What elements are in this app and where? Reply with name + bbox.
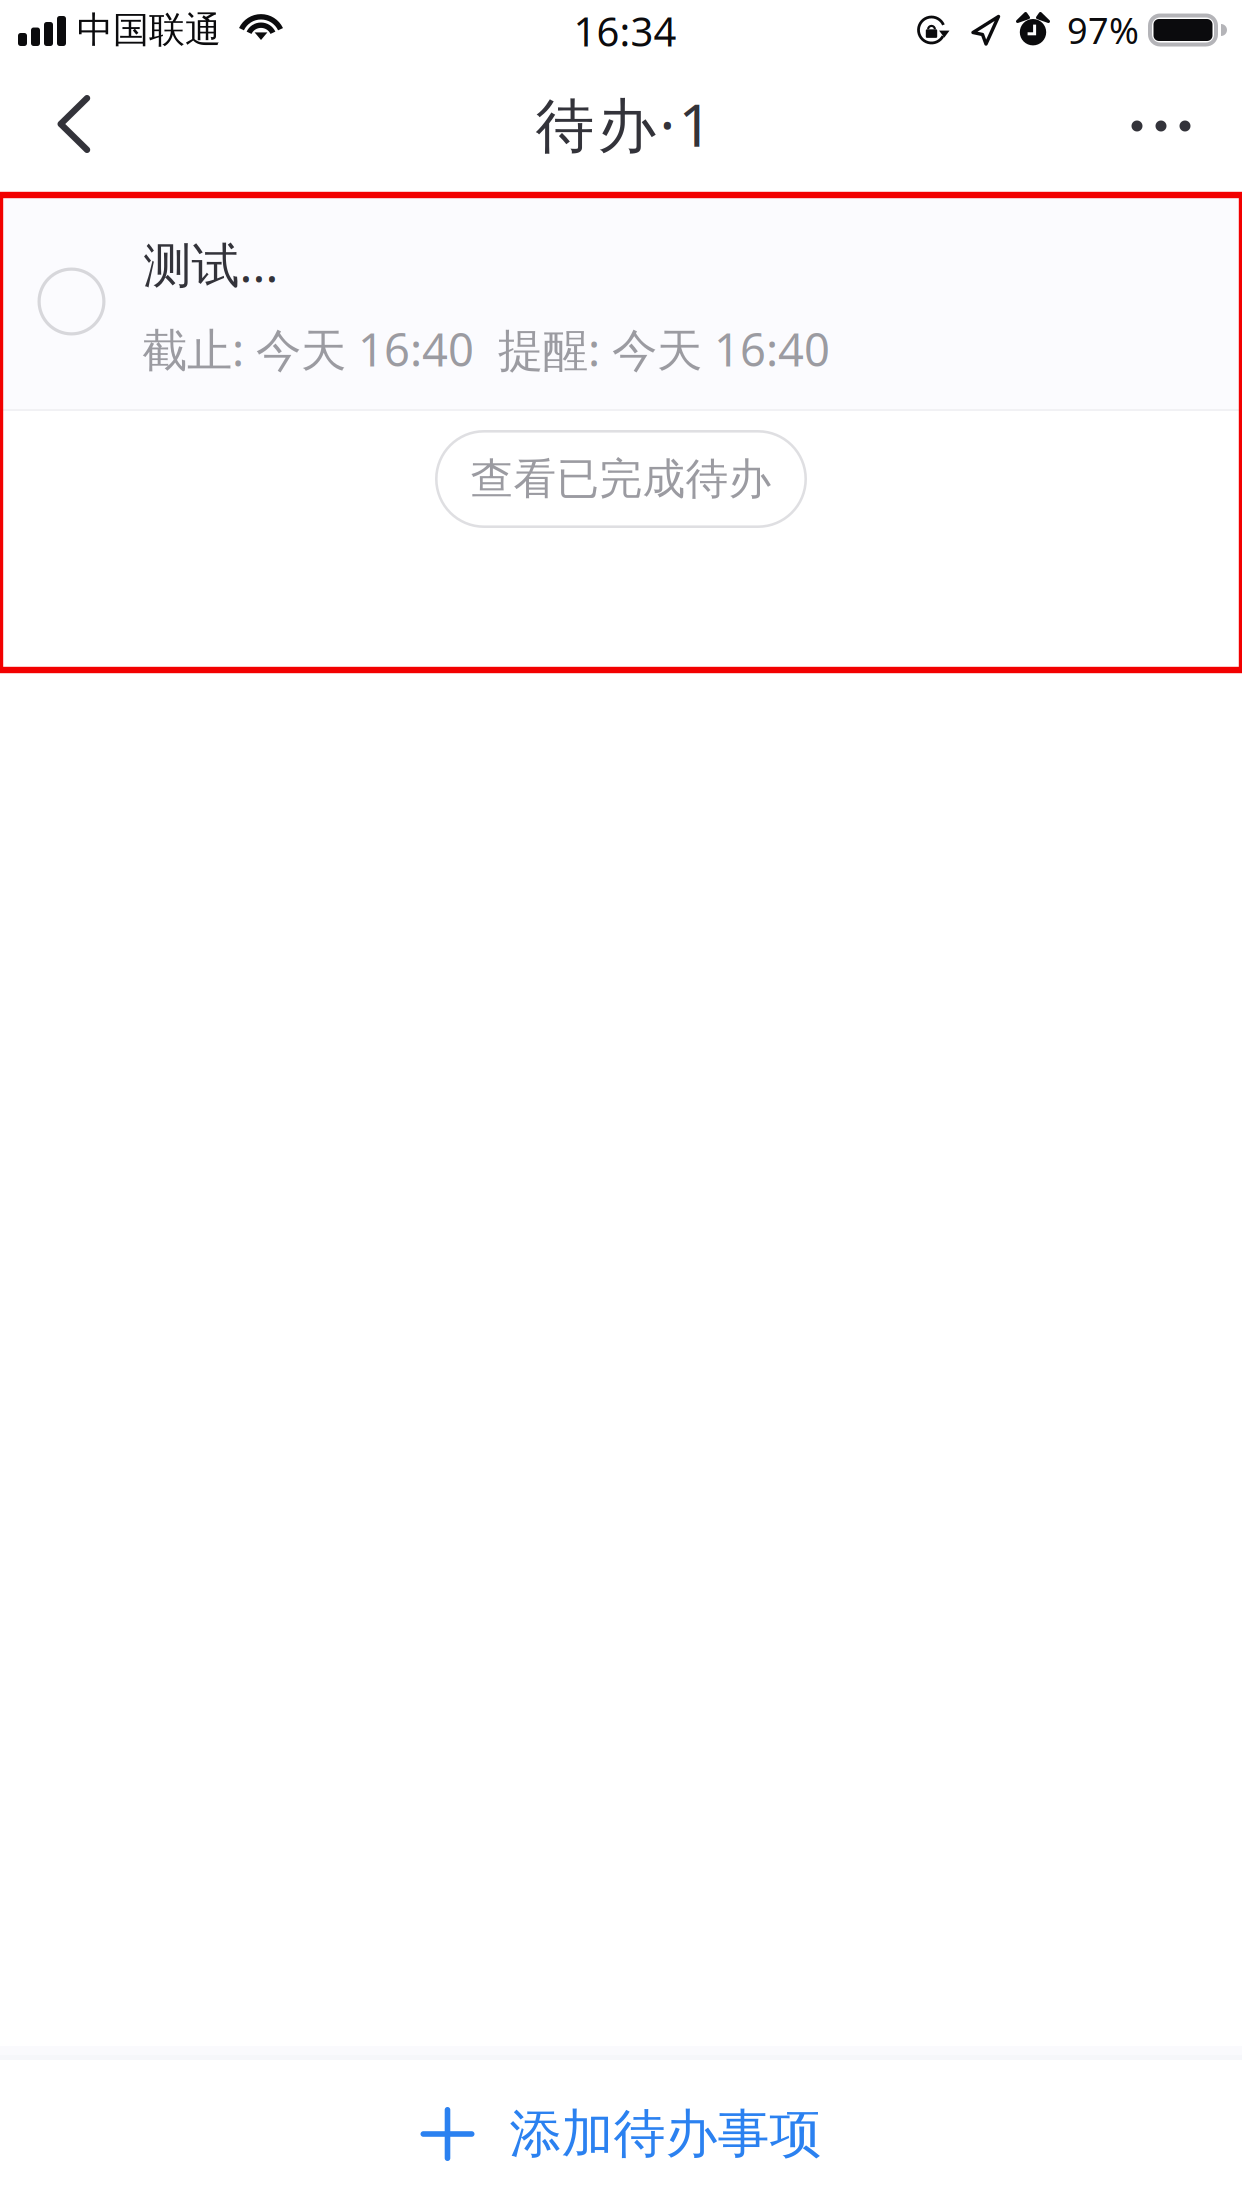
staticText: 16:34 — [573, 4, 676, 57]
button[interactable]: 返回 — [15, 69, 133, 179]
button[interactable]: 添加待办事项 — [0, 2060, 1242, 2208]
button[interactable]: 测试... — [0, 195, 1242, 409]
staticText: 添加待办事项 — [509, 2102, 821, 2166]
button[interactable]: 查看已完成待办 — [435, 430, 807, 528]
staticText: 测试... — [143, 232, 278, 296]
staticText: 中国联通 — [77, 8, 221, 52]
staticText: 截止: 今天 16:40 提醒: 今天 16:40 — [142, 319, 830, 379]
button[interactable]: 更多 — [1098, 71, 1224, 181]
staticText: 97% — [1067, 6, 1139, 54]
staticText: 查看已完成待办 — [470, 453, 771, 505]
staticText: 待办·1 — [535, 85, 712, 163]
